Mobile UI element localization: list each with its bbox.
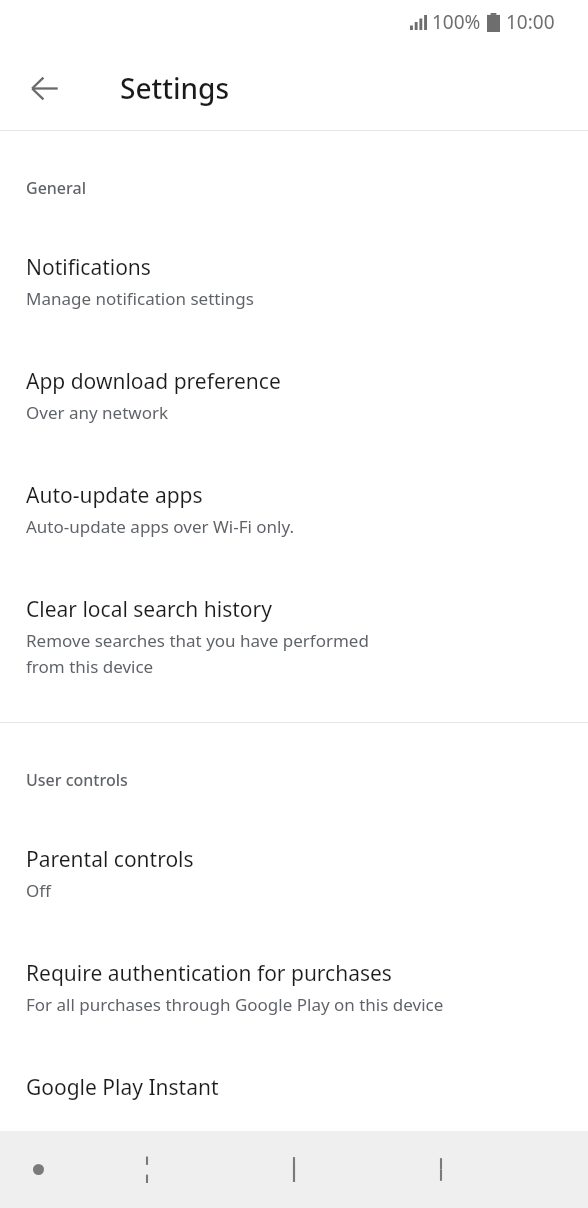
staticText: For all purchases through Google Play on… — [26, 993, 444, 1016]
staticText: Notifications — [26, 253, 151, 282]
button[interactable]: Require authentication for purchases — [0, 959, 588, 1016]
staticText: General — [26, 177, 86, 199]
button[interactable]: Auto-update apps — [0, 481, 588, 538]
staticText: User controls — [26, 769, 128, 791]
button[interactable]: Google Play Instant — [0, 1073, 588, 1102]
staticText: Settings — [120, 69, 230, 107]
staticText: Off — [26, 879, 51, 902]
staticText: Clear local search history — [26, 595, 272, 624]
button[interactable]: App download preference — [0, 367, 588, 424]
staticText: 100% — [432, 9, 481, 35]
button[interactable]: Clear local search history — [0, 595, 588, 678]
staticText: Require authentication for purchases — [26, 959, 392, 988]
button[interactable]: Parental controls — [0, 845, 588, 902]
staticText: Parental controls — [26, 845, 194, 874]
staticText: Remove searches that you have performed … — [26, 629, 369, 678]
button[interactable]: Notifications — [0, 253, 588, 310]
staticText: Auto-update apps — [26, 481, 203, 510]
button[interactable]: Back — [16, 60, 72, 116]
staticText: Google Play Instant — [26, 1073, 219, 1102]
button[interactable]: Menu — [0, 1131, 147, 1208]
staticText: Over any network — [26, 401, 169, 424]
staticText: App download preference — [26, 367, 281, 396]
staticText: Auto-update apps over Wi-Fi only. — [26, 515, 295, 538]
staticText: Manage notification settings — [26, 287, 254, 310]
staticText: 10:00 — [506, 9, 555, 35]
